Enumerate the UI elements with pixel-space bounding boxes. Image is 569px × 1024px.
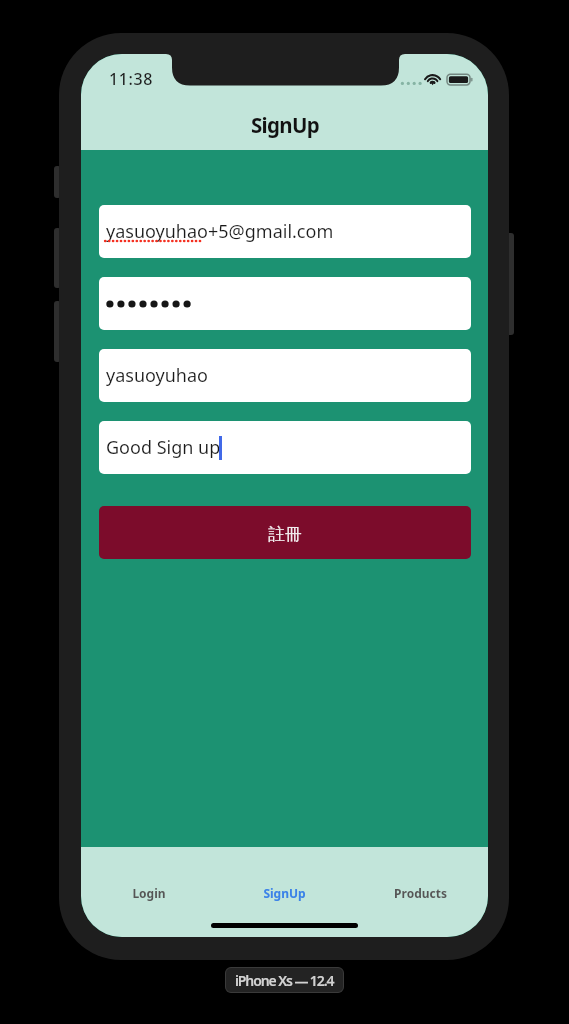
button[interactable]: SignUp — [216, 883, 352, 903]
button[interactable] — [99, 277, 471, 330]
staticText: Good Sign up — [106, 435, 221, 460]
staticText: Products — [394, 885, 447, 901]
staticText: iPhone Xs — 12.4 — [235, 971, 334, 990]
staticText: SignUp — [251, 111, 319, 139]
staticText: yasuoyuhao+5@gmail.com — [106, 219, 334, 244]
staticText: SignUp — [263, 885, 306, 901]
staticText: yasuoyuhao — [106, 363, 208, 388]
button[interactable]: Good Sign up — [99, 421, 471, 474]
button[interactable]: yasuoyuhao — [99, 349, 471, 402]
staticText: 11:38 — [109, 68, 153, 90]
staticText: 註冊 — [268, 524, 302, 545]
button[interactable]: Products — [352, 883, 488, 903]
button[interactable]: yasuoyuhao+5@gmail.com — [99, 205, 471, 258]
button[interactable]: 註冊 — [99, 506, 471, 559]
staticText: Login — [132, 885, 166, 901]
button[interactable]: Login — [81, 883, 216, 903]
